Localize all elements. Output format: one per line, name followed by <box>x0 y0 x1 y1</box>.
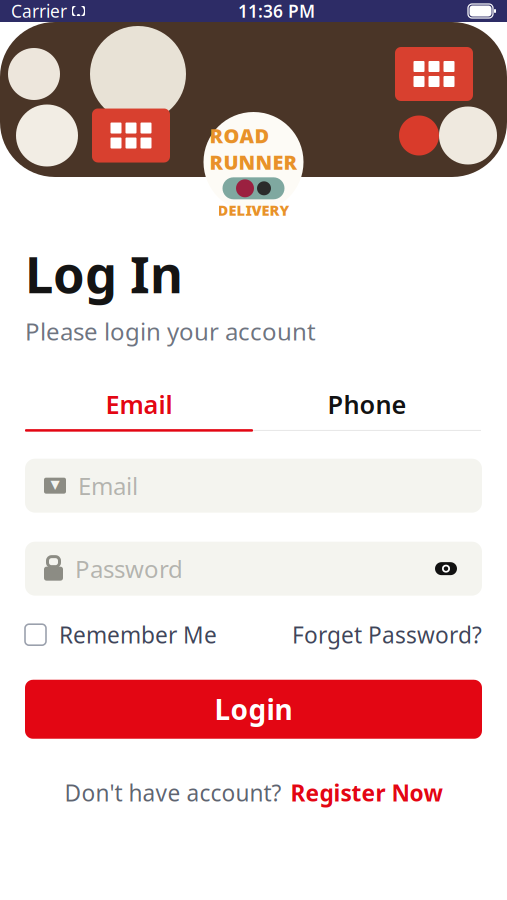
staticText: Phone <box>327 387 406 421</box>
staticText: DELIVERY <box>217 200 289 220</box>
staticText: Email <box>105 387 172 421</box>
button[interactable]: Email <box>25 389 253 419</box>
staticText: Remember Me <box>59 620 217 650</box>
staticText: Log In <box>25 240 183 307</box>
button[interactable]: Remember Me <box>25 614 217 656</box>
staticText: Carrier <box>11 0 67 22</box>
staticText: 11:36 PM <box>238 0 315 22</box>
staticText: ▼ <box>50 478 59 491</box>
staticText: Login <box>214 691 292 728</box>
staticText: Please login your account <box>25 315 316 347</box>
staticText: Don't have account? <box>64 778 281 808</box>
button[interactable]: Forget Password? <box>292 614 482 656</box>
button[interactable]: Login <box>25 680 482 739</box>
staticText: ROAD RUNNER <box>209 122 297 175</box>
staticText: Password <box>75 553 183 585</box>
staticText: Forget Password? <box>292 620 482 650</box>
button[interactable]: Register Now <box>281 774 442 812</box>
button[interactable]: Show password <box>429 552 463 586</box>
button[interactable]: Phone <box>253 389 481 419</box>
staticText: Email <box>78 470 138 502</box>
staticText: Register Now <box>290 778 442 808</box>
